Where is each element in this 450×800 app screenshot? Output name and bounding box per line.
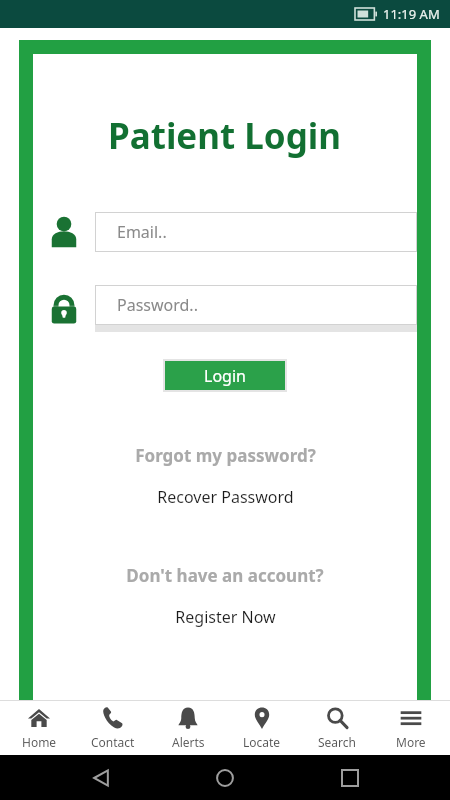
staticText: Password..	[117, 294, 198, 316]
staticText: Patient Login	[108, 112, 342, 160]
button[interactable]: Forgot my password?	[33, 444, 417, 467]
staticText: Email..	[117, 221, 167, 243]
staticText: Locate	[243, 734, 281, 750]
button[interactable]: Locate	[226, 701, 298, 755]
staticText: Login	[204, 365, 246, 387]
staticText: Contact	[91, 734, 135, 750]
button[interactable]: Login	[165, 361, 285, 390]
staticText: Home	[22, 734, 57, 750]
button[interactable]: Search	[301, 701, 373, 755]
button[interactable]: Recover Password	[33, 486, 417, 508]
button[interactable]: Contact	[77, 701, 149, 755]
button[interactable]: More	[375, 701, 447, 755]
button[interactable]: Email..	[95, 212, 417, 252]
staticText: Recover Password	[157, 486, 294, 508]
button[interactable]: Password..	[95, 285, 417, 325]
button[interactable]: Don't have an account?	[33, 564, 417, 587]
staticText: 11:19 AM	[383, 5, 440, 23]
staticText: Register Now	[175, 606, 276, 628]
staticText: More	[396, 734, 426, 750]
staticText: Don't have an account?	[126, 564, 324, 587]
button[interactable]: Home	[3, 701, 75, 755]
staticText: Alerts	[172, 734, 205, 750]
staticText: Forgot my password?	[135, 444, 316, 467]
staticText: Search	[318, 734, 356, 750]
button[interactable]: Register Now	[33, 606, 417, 628]
button[interactable]: Recent apps	[326, 755, 374, 800]
button[interactable]: Home	[201, 755, 249, 800]
button[interactable]: Back	[77, 755, 125, 800]
button[interactable]: Alerts	[152, 701, 224, 755]
